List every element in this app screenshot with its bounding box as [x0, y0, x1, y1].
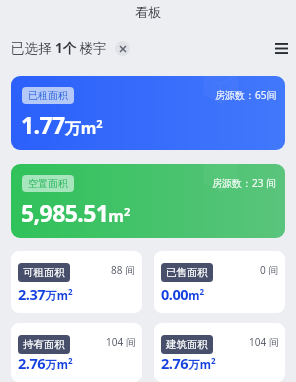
staticText: 88 间: [111, 263, 136, 277]
staticText: 已租面积: [28, 89, 68, 102]
button[interactable]: 建筑面积: [154, 323, 285, 382]
staticText: 已售面积: [166, 266, 208, 279]
staticText: 持有面积: [23, 338, 65, 351]
button[interactable]: Menu: [271, 38, 291, 58]
button[interactable]: 可租面积: [11, 251, 142, 313]
button[interactable]: 已租面积: [11, 76, 285, 150]
button[interactable]: 可租面积: [18, 263, 70, 282]
button[interactable]: Clear selection: [115, 41, 130, 56]
staticText: 5,985.51m2: [21, 197, 131, 228]
button[interactable]: 持有面积: [18, 335, 70, 354]
staticText: 2.76万m2: [18, 353, 73, 373]
staticText: 2.76万m2: [161, 353, 216, 373]
button[interactable]: 空置面积: [11, 164, 285, 238]
button[interactable]: 空置面积: [22, 175, 74, 192]
staticText: 房源数：65间: [215, 88, 277, 102]
staticText: 空置面积: [28, 177, 68, 190]
button[interactable]: 已售面积: [154, 251, 285, 313]
staticText: 可租面积: [23, 266, 65, 279]
button[interactable]: 已租面积: [22, 87, 74, 104]
staticText: 房源数：23 间: [212, 176, 277, 190]
button[interactable]: 建筑面积: [161, 335, 213, 354]
button[interactable]: 已售面积: [161, 263, 213, 282]
staticText: 建筑面积: [166, 338, 208, 351]
staticText: 104 间: [249, 335, 279, 349]
button[interactable]: 已选择 1个 楼宇: [11, 39, 107, 57]
button[interactable]: 持有面积: [11, 323, 142, 382]
staticText: 0 间: [260, 263, 279, 277]
staticText: 2.37万m2: [18, 284, 73, 304]
staticText: 104 间: [106, 335, 136, 349]
staticText: 1.77万m2: [21, 109, 103, 140]
staticText: 看板: [135, 4, 161, 20]
staticText: 0.00m2: [161, 284, 205, 304]
